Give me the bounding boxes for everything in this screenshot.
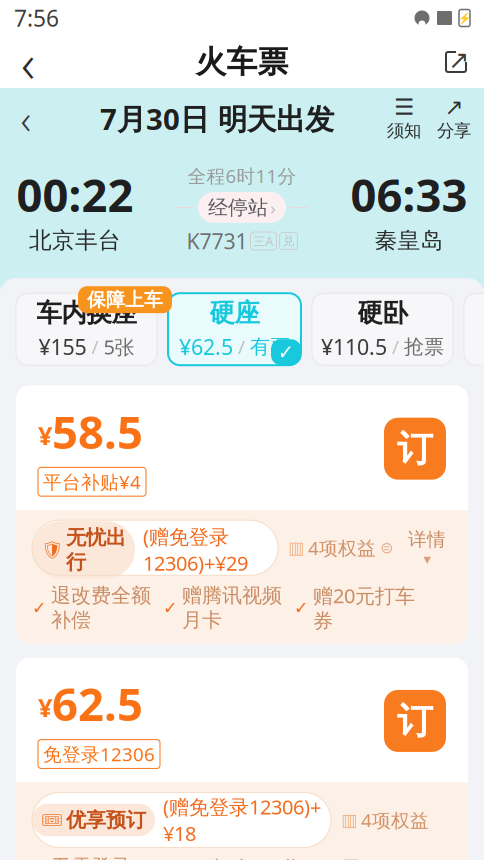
- staticText: ¥155: [38, 333, 86, 361]
- button[interactable]: ¥: [0, 657, 484, 860]
- button[interactable]: 硬座: [168, 293, 301, 365]
- staticText: ▥: [288, 538, 304, 558]
- staticText: ‹: [21, 27, 35, 97]
- staticText: ¥: [38, 418, 52, 452]
- staticText: /: [91, 334, 98, 359]
- staticText: 4项权益: [308, 535, 376, 560]
- staticText: 硬座: [209, 297, 259, 329]
- staticText: 58.5: [52, 401, 143, 461]
- staticText: ▥: [341, 810, 357, 830]
- staticText: 详情: [408, 528, 446, 551]
- staticText: (赠免登录12306)+¥18: [163, 793, 321, 846]
- staticText: 7*24小时购票: [162, 854, 246, 860]
- staticText: 订: [397, 699, 433, 743]
- staticText: 🛡: [41, 540, 63, 560]
- staticText: ⚡: [458, 12, 471, 24]
- staticText: 须知: [387, 120, 421, 141]
- staticText: ↗: [444, 94, 463, 120]
- staticText: /: [238, 334, 245, 359]
- staticText: ☰: [394, 94, 414, 120]
- staticText: 平台补贴¥4: [43, 469, 141, 494]
- button[interactable]: ¥: [0, 385, 484, 643]
- staticText: ✓: [32, 598, 47, 618]
- staticText: ›: [270, 195, 276, 220]
- button[interactable]: ☰: [382, 96, 426, 141]
- staticText: ¥: [38, 691, 52, 724]
- staticText: 7:56: [14, 3, 59, 33]
- button[interactable]: 车内换座: [16, 293, 157, 365]
- button[interactable]: 硬卧: [312, 293, 453, 365]
- staticText: 4项权益: [361, 808, 429, 832]
- staticText: 经停站: [208, 195, 268, 220]
- staticText: 赠腾讯视频月卡: [182, 583, 282, 632]
- staticText: 有票: [250, 334, 290, 359]
- staticText: 保障上车: [87, 288, 163, 311]
- staticText: 00:22: [16, 164, 133, 224]
- button[interactable]: 订: [384, 418, 446, 480]
- staticText: 三A: [253, 233, 273, 249]
- button[interactable]: 前一天: [0, 97, 52, 141]
- staticText: 北京丰台: [29, 226, 121, 254]
- button[interactable]: 返回: [0, 36, 56, 88]
- staticText: 赠20元打车券: [313, 582, 415, 633]
- staticText: (赠免登录12306)+¥29: [143, 523, 248, 576]
- staticText: 赠1088元租车券: [277, 854, 361, 860]
- staticText: 06:33: [350, 164, 467, 224]
- staticText: 无忧出行: [66, 525, 126, 574]
- staticText: 5张: [103, 333, 134, 360]
- staticText: 车内换座: [36, 297, 136, 329]
- staticText: ‹: [20, 92, 31, 145]
- staticText: ↗: [448, 46, 469, 74]
- staticText: 退改费全额补偿: [51, 583, 151, 632]
- staticText: ⊜: [380, 539, 393, 557]
- staticText: 免登录12306: [43, 742, 155, 766]
- staticText: 优享预订: [66, 808, 146, 832]
- staticText: /: [392, 334, 399, 359]
- staticText: ✓: [163, 598, 178, 618]
- staticText: ¥110.5: [321, 333, 387, 361]
- staticText: 无需登录12306: [51, 854, 131, 860]
- button[interactable]: ↗: [432, 96, 476, 141]
- staticText: 7月30日 明天出发: [100, 99, 334, 138]
- staticText: ✓: [277, 341, 294, 364]
- staticText: ▾: [423, 551, 430, 567]
- staticText: ¥62.5: [179, 333, 233, 361]
- staticText: 火车票: [195, 43, 288, 81]
- button[interactable]: 分享: [428, 36, 484, 88]
- staticText: ✓: [294, 598, 309, 618]
- staticText: 全程6时11分: [187, 163, 296, 188]
- staticText: 🎟: [41, 810, 63, 830]
- staticText: 兑: [282, 234, 294, 248]
- staticText: 硬卧: [357, 297, 407, 329]
- staticText: K7731: [186, 227, 247, 255]
- button[interactable]: 订: [384, 690, 446, 752]
- staticText: 抢票: [404, 334, 444, 359]
- staticText: 分享: [437, 120, 471, 141]
- staticText: 订: [397, 427, 433, 471]
- staticText: 秦皇岛: [374, 226, 443, 254]
- staticText: 62.5: [52, 673, 143, 734]
